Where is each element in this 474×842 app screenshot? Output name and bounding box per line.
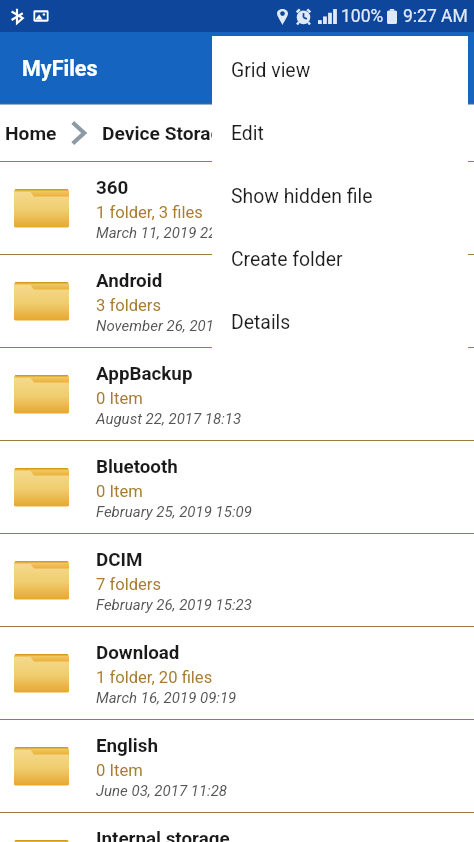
staticText: 1 folder, 20 files — [96, 668, 213, 687]
staticText: Android — [96, 270, 163, 292]
staticText: 0 Item — [96, 761, 143, 780]
button[interactable]: Bluetooth — [0, 441, 474, 533]
staticText: 7 folders — [96, 575, 162, 594]
staticText: Internal storage — [96, 828, 230, 842]
staticText: 1 folder, 3 files — [96, 203, 203, 222]
button[interactable]: Details — [212, 291, 468, 354]
button[interactable]: English — [0, 720, 474, 812]
button[interactable]: Show hidden file — [212, 165, 468, 228]
staticText: 360 — [96, 177, 129, 199]
staticText: Home — [5, 122, 57, 145]
staticText: 0 Item — [96, 482, 143, 501]
staticText: February 25, 2019 15:09 — [96, 503, 252, 521]
button[interactable]: Internal storage — [0, 813, 474, 842]
staticText: Edit — [231, 122, 264, 145]
staticText: AppBackup — [96, 363, 193, 385]
button[interactable]: AppBackup — [0, 348, 474, 440]
staticText: DCIM — [96, 549, 143, 571]
staticText: 9:27 AM — [403, 6, 468, 27]
staticText: Create folder — [231, 248, 343, 271]
staticText: March 16, 2019 09:19 — [96, 689, 237, 707]
staticText: Show hidden file — [231, 185, 373, 208]
button[interactable]: MyFiles — [0, 32, 474, 103]
staticText: February 26, 2019 15:23 — [96, 596, 252, 614]
staticText: Device Storage — [102, 122, 232, 145]
button[interactable]: Grid view — [212, 39, 468, 102]
button[interactable]: 360 — [0, 162, 474, 254]
staticText: Grid view — [231, 59, 311, 82]
button[interactable]: Android — [0, 255, 474, 347]
staticText: March 11, 2019 22:45 — [96, 224, 237, 242]
staticText: June 03, 2017 11:28 — [96, 782, 228, 800]
staticText: Details — [231, 311, 291, 334]
staticText: Download — [96, 642, 180, 664]
staticText: 100% — [341, 6, 384, 27]
button[interactable]: Create folder — [212, 228, 468, 291]
staticText: 0 Item — [96, 389, 143, 408]
staticText: Bluetooth — [96, 456, 178, 478]
staticText: 3 folders — [96, 296, 162, 315]
staticText: November 26, 2017 06:25 — [96, 317, 263, 335]
staticText: August 22, 2017 18:13 — [96, 410, 242, 428]
staticText: MyFiles — [22, 56, 98, 81]
button[interactable]: Device Storage — [92, 122, 232, 145]
button[interactable]: Download — [0, 627, 474, 719]
button[interactable]: DCIM — [0, 534, 474, 626]
staticText: English — [96, 735, 158, 757]
button[interactable]: Edit — [212, 102, 468, 165]
button[interactable]: Home — [0, 122, 66, 145]
